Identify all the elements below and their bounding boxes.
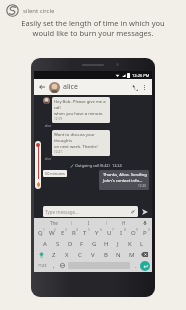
staticText: 2 <box>54 228 56 232</box>
staticText: 3 <box>65 228 67 232</box>
button[interactable]: F <box>76 238 88 249</box>
staticText: Hey Bob- Please give me a call when you … <box>54 99 108 117</box>
staticText: F <box>80 240 84 248</box>
button[interactable]: 7 <box>103 227 115 238</box>
button[interactable]: G <box>88 238 100 249</box>
button[interactable]: Send <box>140 207 149 216</box>
button[interactable]: Enter <box>140 261 150 271</box>
staticText: C <box>78 251 82 259</box>
button[interactable]: 1 <box>35 227 46 238</box>
button[interactable]: Voice input <box>141 219 149 227</box>
staticText: 12:19 <box>54 117 63 121</box>
staticText: H <box>122 220 126 226</box>
button[interactable]: Silent Circle logo <box>6 4 55 17</box>
staticText: P <box>143 229 147 237</box>
staticText: 0 <box>148 228 150 232</box>
button[interactable]: Call <box>129 82 140 93</box>
button[interactable]: Contact avatar <box>49 82 60 93</box>
staticText: W <box>49 229 55 237</box>
button[interactable]: V <box>86 249 99 260</box>
button[interactable]: ?123 <box>36 260 49 271</box>
staticText: 50 minutes <box>45 171 65 176</box>
button[interactable]: 9 <box>127 227 139 238</box>
button[interactable]: B <box>99 249 112 260</box>
staticText: silent circle <box>23 7 55 15</box>
staticText: 4 <box>76 228 78 232</box>
staticText: , <box>53 262 55 269</box>
staticText: A <box>43 240 47 248</box>
staticText: 5 <box>88 228 90 232</box>
staticText: K <box>128 240 132 248</box>
staticText: Outgoing call (0:42) <box>75 163 110 168</box>
staticText: alice <box>43 124 52 128</box>
staticText: D <box>68 240 73 248</box>
button[interactable]: Type message... <box>45 206 136 217</box>
button[interactable]: 4 <box>68 227 79 238</box>
button[interactable]: Back <box>37 82 47 92</box>
button[interactable]: N <box>112 249 125 260</box>
staticText: N <box>116 251 121 259</box>
staticText: J <box>117 240 119 248</box>
button[interactable]: 6 <box>91 227 103 238</box>
button[interactable]: X <box>60 249 73 260</box>
button[interactable]: J <box>112 238 124 249</box>
staticText: 1 <box>43 228 45 232</box>
button[interactable]: A <box>38 238 51 249</box>
staticText: Q <box>38 229 43 237</box>
button[interactable]: Change language <box>58 260 67 271</box>
staticText: I <box>120 229 123 237</box>
button[interactable]: Hey Bob- Please give me a call when you … <box>54 99 108 121</box>
button[interactable]: D <box>64 238 76 249</box>
staticText: Want to discuss your thoughts on next we… <box>54 132 108 150</box>
staticText: The <box>50 220 58 226</box>
button[interactable]: , <box>49 260 58 271</box>
button[interactable]: Z <box>48 249 60 260</box>
staticText: S <box>56 240 60 248</box>
button[interactable]: K <box>124 238 136 249</box>
button[interactable]: H <box>107 219 141 227</box>
staticText: L <box>140 240 144 248</box>
staticText: . <box>135 262 137 269</box>
button[interactable]: Shift <box>35 249 48 260</box>
button[interactable]: Burn timer slider <box>35 141 41 189</box>
staticText: 9 <box>136 228 138 232</box>
button[interactable]: The <box>37 219 71 227</box>
staticText: Y <box>95 229 99 237</box>
staticText: H <box>104 240 109 248</box>
staticText: M <box>129 251 135 259</box>
button[interactable]: . <box>131 260 140 271</box>
staticText: alice <box>43 157 52 161</box>
staticText: Type message... <box>45 209 79 215</box>
button[interactable]: 0 <box>139 227 151 238</box>
staticText: V <box>91 251 95 259</box>
staticText: 12:26 PM <box>132 73 150 78</box>
staticText: Easily set the length of time in which y… <box>21 18 165 38</box>
staticText: 7 <box>112 228 114 232</box>
staticText: 8 <box>124 228 126 232</box>
button[interactable]: Backspace <box>138 249 151 260</box>
button[interactable]: 2 <box>46 227 57 238</box>
button[interactable]: 3 <box>57 227 68 238</box>
staticText: X <box>65 251 69 259</box>
staticText: ?123 <box>38 263 47 268</box>
button[interactable]: M <box>125 249 138 260</box>
button[interactable]: H <box>100 238 112 249</box>
button[interactable]: Thanks, Alice. Sending John's contact in… <box>101 172 147 188</box>
button[interactable]: 5 <box>79 227 91 238</box>
button[interactable]: 8 <box>115 227 127 238</box>
staticText: G <box>92 240 97 248</box>
button[interactable]: L <box>136 238 148 249</box>
staticText: T <box>83 229 87 237</box>
button[interactable]: S <box>51 238 64 249</box>
staticText: I <box>88 220 90 226</box>
staticText: O <box>131 229 136 237</box>
button[interactable]: Want to discuss your thoughts on next we… <box>54 132 108 154</box>
staticText: 12:25 <box>138 184 147 188</box>
button[interactable]: I <box>72 219 106 227</box>
other: Attach <box>131 209 136 214</box>
button[interactable]: More options <box>140 83 149 92</box>
other: Silent Circle logo <box>6 4 19 17</box>
button[interactable]: C <box>73 249 86 260</box>
staticText: B <box>104 251 108 259</box>
